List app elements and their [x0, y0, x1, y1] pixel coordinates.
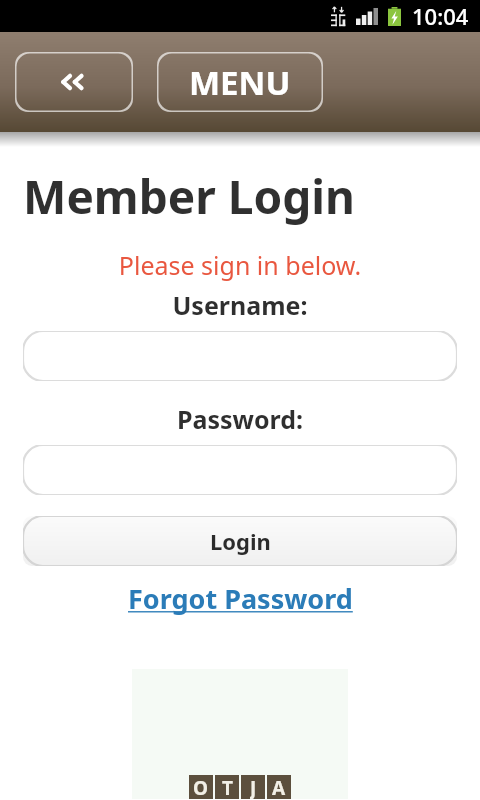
staticText: T — [222, 775, 233, 799]
staticText: J — [250, 775, 257, 799]
staticText: MENU — [189, 60, 291, 105]
button[interactable]: Forgot Password — [124, 576, 357, 621]
button[interactable]: Login — [23, 516, 457, 566]
staticText: O — [193, 775, 209, 799]
staticText: Login — [210, 526, 271, 556]
button[interactable] — [23, 331, 457, 381]
staticText: Forgot Password — [128, 580, 353, 617]
button[interactable]: MENU — [157, 52, 323, 112]
staticText: Password: — [0, 402, 480, 436]
staticText: 10:04 — [412, 1, 469, 31]
staticText: Member Login — [23, 165, 355, 228]
staticText: Username: — [0, 288, 480, 322]
staticText: A — [272, 775, 286, 799]
button[interactable] — [23, 445, 457, 495]
button[interactable]: Back — [15, 52, 133, 112]
staticText: Please sign in below. — [0, 248, 480, 282]
